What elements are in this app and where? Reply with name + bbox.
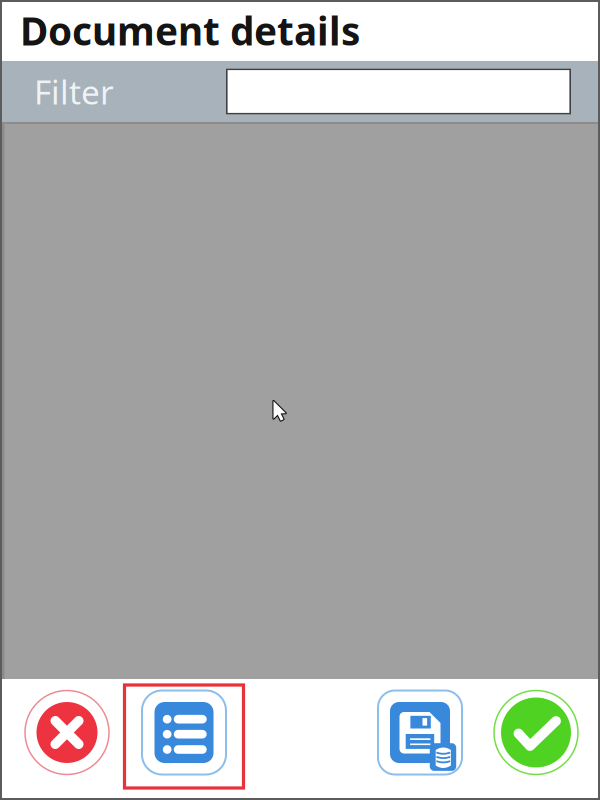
button[interactable]: Cancel: [22, 687, 112, 777]
staticText: Filter: [34, 69, 114, 114]
staticText: Document details: [20, 5, 360, 56]
button[interactable]: Save to database: [375, 687, 465, 777]
button[interactable]: Show details list: [123, 677, 249, 787]
button[interactable]: Confirm: [491, 687, 581, 777]
